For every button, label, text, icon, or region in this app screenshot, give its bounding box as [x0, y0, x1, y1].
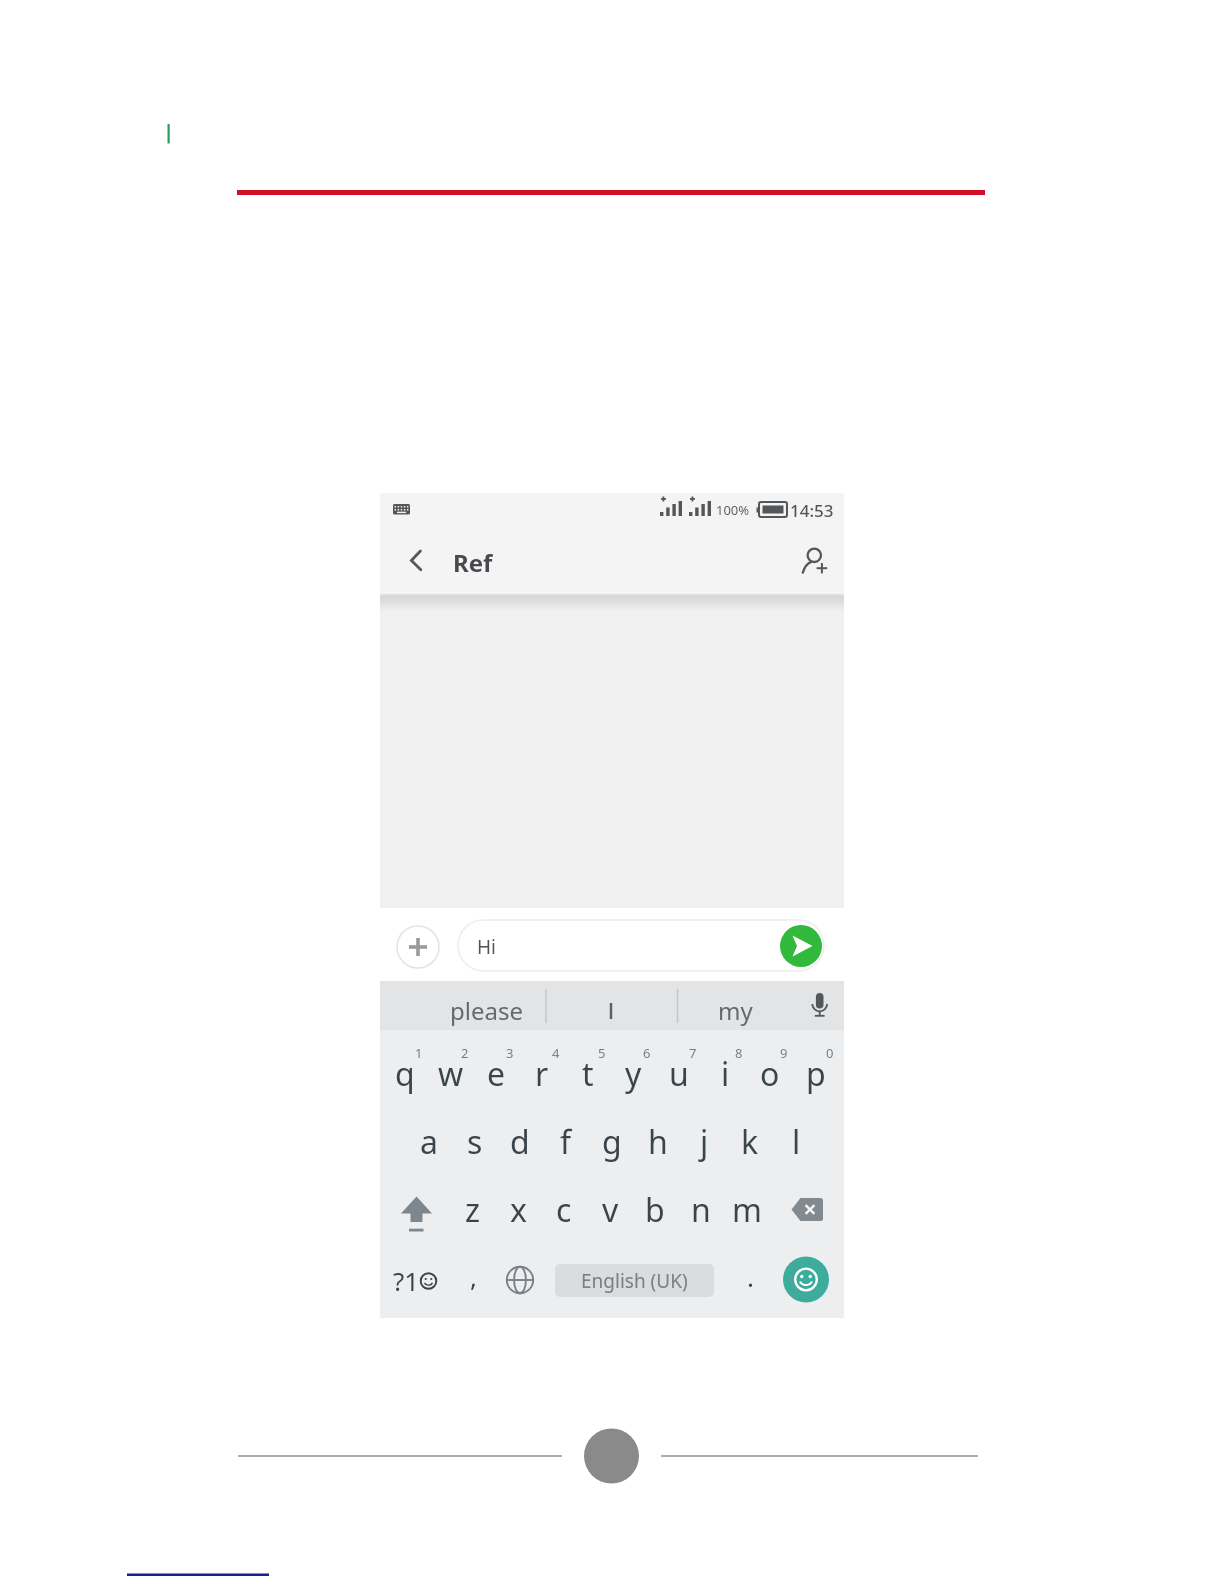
- button[interactable]: u: [657, 1052, 701, 1096]
- button[interactable]: h: [636, 1120, 680, 1164]
- staticText: g: [602, 1120, 622, 1164]
- staticText: u: [669, 1052, 689, 1096]
- button[interactable]: [458, 920, 824, 971]
- button[interactable]: [800, 990, 840, 1030]
- button[interactable]: b: [633, 1188, 677, 1232]
- staticText: v: [602, 1188, 619, 1232]
- staticText: c: [556, 1188, 572, 1232]
- staticText: 4: [552, 1044, 560, 1062]
- button[interactable]: ?1: [383, 1260, 429, 1300]
- button[interactable]: [783, 1256, 830, 1303]
- button[interactable]: z: [451, 1188, 495, 1232]
- button[interactable]: English (UK): [555, 1264, 714, 1297]
- staticText: 14:53: [790, 499, 834, 519]
- button[interactable]: [789, 1192, 827, 1230]
- staticText: t: [582, 1052, 594, 1096]
- staticText: 8: [735, 1044, 743, 1062]
- staticText: w: [438, 1052, 464, 1096]
- staticText: p: [806, 1052, 826, 1096]
- button[interactable]: d: [498, 1120, 542, 1164]
- button[interactable]: please: [421, 993, 551, 1027]
- staticText: f: [560, 1120, 572, 1164]
- button[interactable]: [561, 993, 661, 1027]
- staticText: 3: [506, 1044, 514, 1062]
- staticText: 6: [643, 1044, 651, 1062]
- button[interactable]: s: [453, 1120, 497, 1164]
- staticText: 0: [826, 1044, 834, 1062]
- button[interactable]: [780, 925, 822, 967]
- button[interactable]: c: [542, 1188, 586, 1232]
- button[interactable]: a: [407, 1120, 451, 1164]
- staticText: English (UK): [581, 1268, 688, 1294]
- button[interactable]: [397, 926, 439, 968]
- button[interactable]: y: [611, 1052, 655, 1096]
- staticText: 2: [461, 1044, 469, 1062]
- button[interactable]: [794, 539, 838, 583]
- staticText: z: [465, 1188, 481, 1232]
- staticText: a: [420, 1120, 438, 1164]
- staticText: d: [510, 1120, 530, 1164]
- button[interactable]: g: [590, 1120, 634, 1164]
- staticText: j: [700, 1120, 709, 1164]
- button[interactable]: p: [794, 1052, 838, 1096]
- staticText: ,: [470, 1259, 477, 1294]
- button[interactable]: t: [566, 1052, 610, 1096]
- button[interactable]: w: [429, 1052, 473, 1096]
- staticText: .: [747, 1259, 754, 1294]
- button[interactable]: [500, 1260, 540, 1300]
- staticText: r: [535, 1052, 549, 1096]
- staticText: 100%: [716, 501, 750, 517]
- button[interactable]: k: [728, 1120, 772, 1164]
- staticText: i: [721, 1052, 730, 1096]
- staticText: m: [732, 1188, 762, 1232]
- button[interactable]: x: [496, 1188, 540, 1232]
- button[interactable]: ,: [458, 1256, 488, 1296]
- staticText: l: [792, 1120, 801, 1164]
- staticText: x: [510, 1188, 527, 1232]
- staticText: Hi: [477, 934, 496, 960]
- button[interactable]: v: [588, 1188, 632, 1232]
- button[interactable]: n: [679, 1188, 723, 1232]
- staticText: q: [395, 1052, 415, 1096]
- staticText: my: [718, 994, 753, 1027]
- button[interactable]: l: [774, 1120, 818, 1164]
- button[interactable]: my: [690, 993, 780, 1027]
- button[interactable]: e: [474, 1052, 518, 1096]
- staticText: 7: [689, 1044, 697, 1062]
- staticText: h: [648, 1120, 668, 1164]
- staticText: k: [741, 1120, 759, 1164]
- staticText: please: [450, 994, 523, 1027]
- staticText: Ref: [453, 546, 493, 574]
- staticText: 5: [598, 1044, 606, 1062]
- staticText: 9: [780, 1044, 788, 1062]
- button[interactable]: r: [520, 1052, 564, 1096]
- staticText: 1: [415, 1044, 423, 1062]
- staticText: b: [645, 1188, 665, 1232]
- staticText: ?1: [393, 1263, 420, 1298]
- staticText: o: [760, 1052, 780, 1096]
- staticText: y: [625, 1052, 642, 1096]
- button[interactable]: [398, 1192, 436, 1230]
- staticText: n: [691, 1188, 711, 1232]
- button[interactable]: j: [682, 1120, 726, 1164]
- staticText: e: [487, 1052, 506, 1096]
- button[interactable]: q: [383, 1052, 427, 1096]
- button[interactable]: .: [735, 1256, 765, 1296]
- button[interactable]: m: [725, 1188, 769, 1232]
- button[interactable]: f: [544, 1120, 588, 1164]
- button[interactable]: [395, 535, 445, 585]
- button[interactable]: i: [703, 1052, 747, 1096]
- button[interactable]: o: [748, 1052, 792, 1096]
- staticText: s: [467, 1120, 483, 1164]
